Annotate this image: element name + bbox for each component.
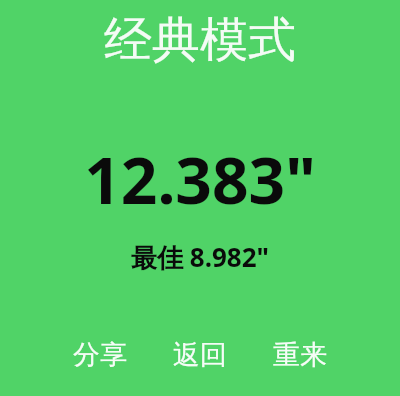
staticText: 经典模式 — [0, 10, 400, 70]
staticText: 返回 — [173, 338, 227, 372]
button[interactable]: 分享 — [66, 333, 134, 377]
button[interactable]: 返回 — [166, 333, 234, 377]
staticText: 分享 — [73, 338, 127, 372]
button[interactable]: 重来 — [266, 333, 334, 377]
staticText: 重来 — [273, 338, 327, 372]
staticText: 12.383" — [0, 136, 400, 223]
staticText: 最佳 8.982" — [0, 239, 400, 275]
